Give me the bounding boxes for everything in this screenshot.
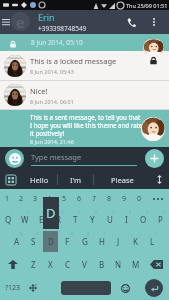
staticText: 8 Jun 2014, 21:46 bbox=[30, 138, 74, 145]
staticText: I hope you will like this theme and rate bbox=[30, 121, 143, 129]
button[interactable]: Shift bbox=[0, 253, 25, 276]
button[interactable]: 8 bbox=[118, 208, 135, 230]
button[interactable]: 7 bbox=[87, 189, 102, 208]
button[interactable]: 5 bbox=[57, 189, 72, 208]
button[interactable]: 9 bbox=[117, 189, 132, 208]
staticText: + bbox=[138, 231, 141, 236]
staticText: Y bbox=[90, 214, 95, 225]
button[interactable]: 3 bbox=[33, 208, 50, 230]
button[interactable]: Add attachment bbox=[145, 149, 164, 168]
button[interactable]: 5 bbox=[67, 208, 84, 230]
button[interactable]: N bbox=[110, 253, 127, 276]
button[interactable]: 6 bbox=[84, 208, 101, 230]
staticText: I'm bbox=[70, 175, 82, 185]
button[interactable]: 2 bbox=[16, 208, 33, 230]
button[interactable]: 2 bbox=[14, 189, 28, 208]
staticText: Nice! bbox=[30, 86, 48, 96]
staticText: 9 bbox=[122, 194, 127, 204]
staticText: Hello bbox=[30, 175, 49, 185]
staticText: C bbox=[65, 259, 71, 270]
staticText: 8 bbox=[129, 209, 132, 214]
button[interactable]: Emoji bbox=[5, 149, 24, 168]
staticText: S bbox=[31, 236, 36, 247]
button[interactable]: Hello bbox=[21, 170, 57, 189]
button[interactable]: Enter bbox=[139, 276, 169, 300]
button[interactable]: This is a sent message, to tell you that bbox=[0, 110, 169, 147]
button[interactable]: X bbox=[42, 253, 59, 276]
button[interactable]: Call bbox=[121, 12, 141, 32]
staticText: % bbox=[70, 231, 74, 236]
button[interactable]: Open navigation menu bbox=[0, 10, 12, 34]
staticText: 7 bbox=[112, 209, 115, 214]
button[interactable]: 1 bbox=[0, 189, 14, 208]
staticText: ( bbox=[156, 231, 158, 236]
staticText: 8 Jun 2014, 05:10 bbox=[31, 38, 83, 47]
staticText: it positively! bbox=[30, 129, 65, 137]
button[interactable]: * bbox=[93, 230, 110, 253]
button[interactable]: 8 bbox=[102, 189, 117, 208]
button[interactable]: 7 bbox=[101, 208, 118, 230]
staticText: 8 Jun 2014, 05:43 bbox=[30, 68, 74, 75]
staticText: ?123 bbox=[5, 283, 21, 293]
staticText: 5 bbox=[78, 209, 81, 214]
staticText: This is a sent message, to tell you that bbox=[30, 113, 141, 121]
button[interactable]: & bbox=[76, 230, 93, 253]
staticText: O bbox=[140, 214, 147, 225]
staticText: * bbox=[104, 231, 107, 236]
button[interactable]: 4 bbox=[42, 189, 57, 208]
button[interactable]: Please bbox=[94, 170, 150, 189]
button[interactable]: 6 bbox=[72, 189, 87, 208]
button[interactable]: Backspace bbox=[144, 253, 169, 276]
button[interactable]: B bbox=[93, 253, 110, 276]
staticText: B bbox=[99, 259, 105, 270]
button[interactable]: ( bbox=[144, 230, 161, 253]
staticText: Please bbox=[111, 175, 134, 185]
staticText: U bbox=[107, 214, 113, 225]
staticText: & bbox=[87, 231, 90, 236]
button[interactable]: I'm bbox=[58, 170, 93, 189]
button[interactable]: Emoji keyboard bbox=[111, 276, 139, 300]
button[interactable]: C bbox=[59, 253, 76, 276]
button[interactable]: € bbox=[42, 230, 59, 253]
staticText: J bbox=[117, 236, 120, 247]
button[interactable]: ?123 bbox=[0, 276, 26, 300]
staticText: 8 Jun 2014, 06:01 bbox=[30, 98, 74, 105]
button[interactable]: More symbols bbox=[147, 189, 169, 208]
button[interactable]: % bbox=[59, 230, 76, 253]
staticText: A bbox=[14, 236, 20, 247]
staticText: D bbox=[48, 236, 54, 247]
staticText: T bbox=[73, 214, 78, 225]
button[interactable]: V bbox=[76, 253, 93, 276]
button[interactable]: More options bbox=[146, 14, 162, 30]
button[interactable]: Z bbox=[25, 253, 42, 276]
button[interactable]: # bbox=[25, 230, 42, 253]
button[interactable]: 0 bbox=[132, 189, 147, 208]
button[interactable]: 9 bbox=[135, 208, 152, 230]
staticText: 0 bbox=[163, 209, 166, 214]
button[interactable]: 4 bbox=[50, 208, 67, 230]
button[interactable]: M bbox=[127, 253, 144, 276]
button[interactable]: Space bbox=[39, 276, 111, 300]
button[interactable]: 1 bbox=[0, 208, 16, 230]
button[interactable]: Keyboard settings bbox=[0, 170, 21, 189]
button[interactable]: Change language bbox=[26, 276, 39, 300]
staticText: 0 bbox=[137, 194, 142, 204]
staticText: P bbox=[158, 214, 163, 225]
button[interactable]: + bbox=[127, 230, 144, 253]
button[interactable]: This is a locked message bbox=[0, 51, 169, 80]
button[interactable]: Expand suggestions bbox=[150, 170, 169, 189]
staticText: 1 bbox=[5, 194, 10, 204]
staticText: 5 bbox=[62, 194, 67, 204]
button[interactable]: Nice! bbox=[0, 81, 169, 109]
staticText: Erin bbox=[38, 11, 55, 23]
staticText: 2 bbox=[19, 194, 24, 204]
staticText: 8 bbox=[107, 194, 112, 204]
staticText: 9 bbox=[146, 209, 149, 214]
staticText: 3 bbox=[33, 194, 38, 204]
button[interactable]: 0 bbox=[152, 208, 169, 230]
button[interactable]: 3 bbox=[28, 189, 42, 208]
button[interactable]: @ bbox=[8, 230, 25, 253]
button[interactable]: - bbox=[110, 230, 127, 253]
staticText: 7 bbox=[92, 194, 97, 204]
